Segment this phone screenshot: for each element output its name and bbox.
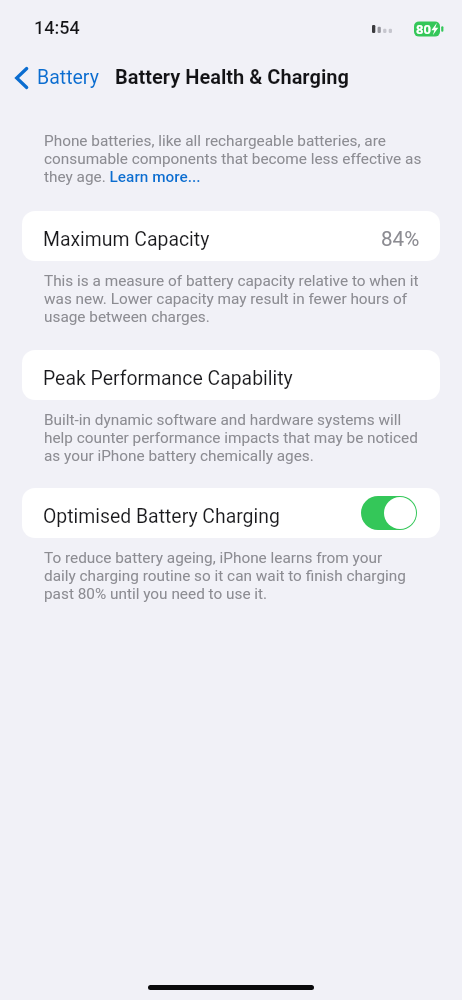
staticText: Battery bbox=[37, 66, 99, 89]
button[interactable]: Optimised Battery Charging bbox=[361, 496, 417, 530]
button[interactable]: Peak Performance Capability bbox=[22, 350, 440, 400]
staticText: Phone batteries, like all rechargeable b… bbox=[44, 132, 422, 186]
staticText: This is a measure of battery capacity re… bbox=[44, 272, 419, 326]
staticText: 80 bbox=[416, 22, 431, 37]
button[interactable]: Back bbox=[0, 60, 109, 95]
staticText: Peak Performance Capability bbox=[43, 367, 293, 390]
staticText: To reduce battery ageing, iPhone learns … bbox=[44, 549, 406, 603]
staticText: 14:54 bbox=[34, 17, 80, 38]
button[interactable]: Optimised Battery Charging bbox=[22, 488, 440, 538]
staticText: Maximum Capacity bbox=[43, 228, 210, 251]
other: Back bbox=[15, 67, 28, 89]
button[interactable]: Maximum Capacity bbox=[22, 211, 440, 261]
staticText: 84% bbox=[381, 227, 420, 251]
staticText: Optimised Battery Charging bbox=[43, 505, 280, 528]
staticText: Built-in dynamic software and hardware s… bbox=[44, 411, 418, 465]
staticText: Battery Health & Charging bbox=[115, 65, 349, 88]
